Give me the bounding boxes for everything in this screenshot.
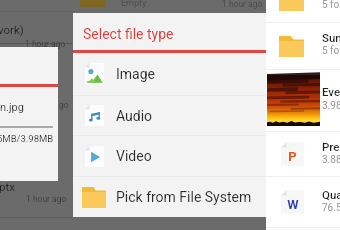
staticText: n.jpg bbox=[0, 101, 24, 114]
staticText: Pres bbox=[322, 140, 340, 153]
button[interactable]: P bbox=[266, 132, 340, 176]
staticText: 3.88 bbox=[322, 154, 340, 166]
button[interactable]: Pick from File System bbox=[73, 177, 266, 217]
staticText: Pick from File System bbox=[116, 189, 252, 205]
staticText: 5MB/3.98MB bbox=[0, 133, 54, 144]
staticText: Video bbox=[116, 148, 152, 164]
staticText: Sum bbox=[322, 31, 340, 44]
button[interactable]: Sum bbox=[266, 23, 340, 69]
staticText: 1 hour ago bbox=[25, 39, 66, 49]
staticText: 1 hour ago bbox=[222, 0, 263, 9]
staticText: vork) bbox=[0, 23, 24, 36]
staticText: Audio bbox=[116, 108, 153, 124]
staticText: Even bbox=[322, 85, 340, 98]
staticText: 76.5 bbox=[322, 202, 340, 214]
button[interactable]: Even bbox=[266, 70, 340, 131]
staticText: W bbox=[287, 197, 299, 212]
button[interactable]: Image bbox=[73, 52, 266, 95]
button[interactable]: W bbox=[266, 177, 340, 227]
staticText: 5 fold bbox=[322, 0, 340, 11]
staticText: go bbox=[59, 100, 69, 110]
staticText: Empty bbox=[121, 0, 147, 9]
staticText: P bbox=[288, 149, 297, 164]
staticText: ptx bbox=[0, 180, 15, 193]
staticText: Image bbox=[116, 66, 155, 82]
button[interactable]: Audio bbox=[73, 96, 266, 135]
button[interactable]: Video bbox=[73, 136, 266, 176]
staticText: 5 fold bbox=[322, 45, 340, 57]
staticText: 1 hour ago bbox=[26, 194, 67, 204]
staticText: Select file type bbox=[83, 26, 174, 42]
staticText: Qua bbox=[322, 188, 340, 201]
staticText: 3.98 bbox=[322, 100, 340, 112]
